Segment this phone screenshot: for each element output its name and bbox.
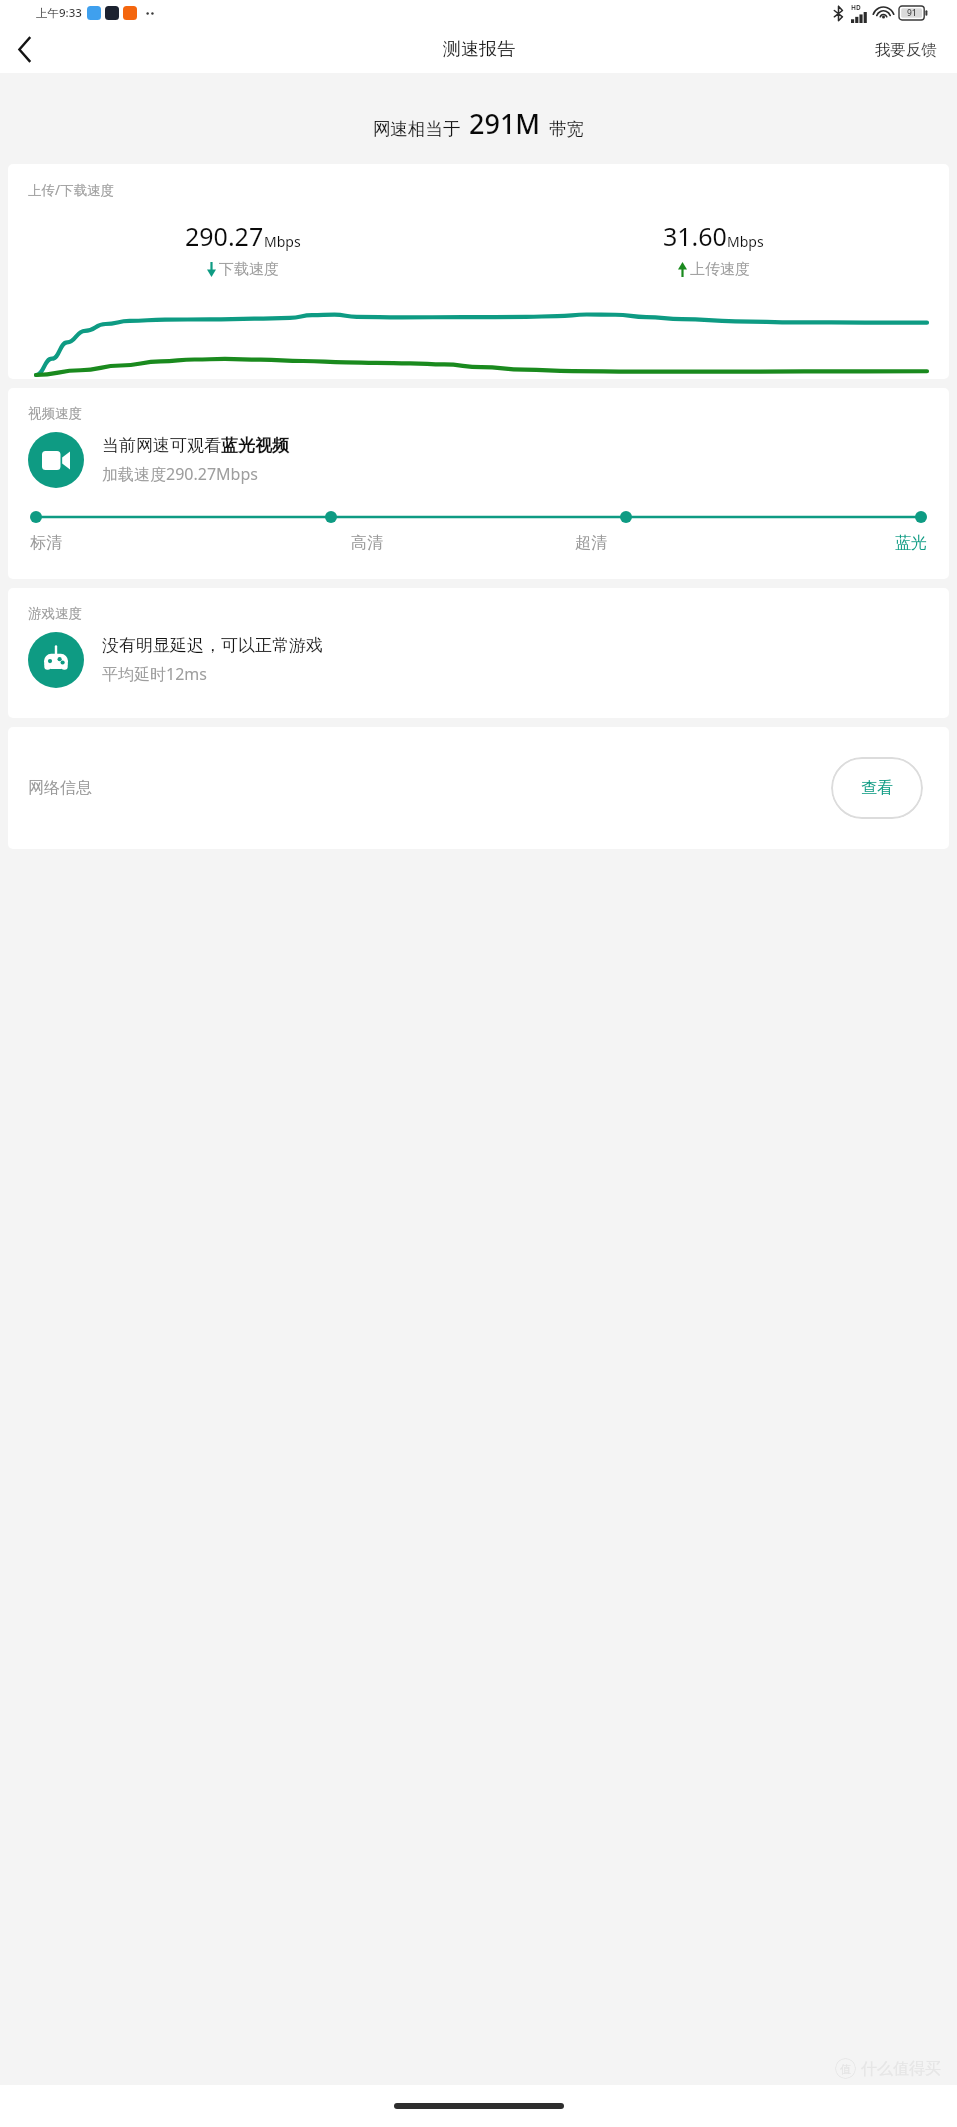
button[interactable]: 我要反馈 xyxy=(855,30,957,70)
staticText: 测速报告 xyxy=(443,38,515,61)
staticText: 网络信息 xyxy=(28,778,92,798)
staticText: 超清 xyxy=(575,533,607,553)
staticText: 平均延时12ms xyxy=(102,663,207,685)
staticText: 291M xyxy=(469,105,541,142)
staticText: 查看 xyxy=(861,778,893,798)
staticText: 网速相当于 xyxy=(373,118,461,140)
button[interactable]: 查看 xyxy=(831,757,923,819)
button[interactable]: 视频速度 xyxy=(8,388,949,579)
staticText: 游戏速度 xyxy=(28,605,82,622)
staticText: 标清 xyxy=(30,533,62,553)
staticText: 高清 xyxy=(351,533,383,553)
staticText: 下载速度 xyxy=(219,260,279,279)
staticText: 视频速度 xyxy=(28,405,82,422)
button[interactable]: 游戏速度 xyxy=(8,588,949,718)
staticText: 带宽 xyxy=(549,118,584,140)
staticText: 上传速度 xyxy=(690,260,750,279)
staticText: 值 xyxy=(840,2062,851,2076)
staticText: 当前网速可观看蓝光视频 xyxy=(102,435,289,456)
button[interactable]: 超清 xyxy=(479,533,703,553)
staticText: 91 xyxy=(907,7,917,19)
staticText: 上传/下载速度 xyxy=(28,181,115,199)
staticText: 上午9:33 xyxy=(36,5,82,21)
button[interactable]: 返回 xyxy=(0,26,50,73)
button[interactable]: 蓝光 xyxy=(703,533,927,553)
staticText: 蓝光 xyxy=(895,533,927,553)
staticText: 290.27 xyxy=(185,219,264,253)
button[interactable]: 高清 xyxy=(255,533,479,553)
staticText: 什么值得买 xyxy=(861,2059,941,2079)
staticText: 加载速度290.27Mbps xyxy=(102,463,258,485)
staticText: 没有明显延迟，可以正常游戏 xyxy=(102,635,323,656)
staticText: Mbps xyxy=(264,232,301,251)
staticText: HD xyxy=(851,3,861,12)
staticText: 31.60 xyxy=(663,219,727,253)
staticText: 我要反馈 xyxy=(875,40,937,60)
staticText: Mbps xyxy=(727,232,764,251)
button[interactable]: 标清 xyxy=(30,533,255,553)
button[interactable]: 上传/下载速度 xyxy=(8,164,949,379)
